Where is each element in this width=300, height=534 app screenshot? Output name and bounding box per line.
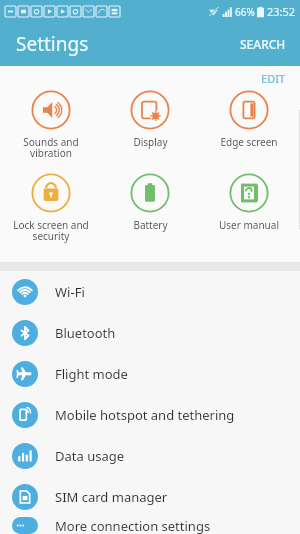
staticText: 66% <box>235 5 255 19</box>
staticText: Edge screen <box>220 135 278 149</box>
button[interactable]: Flight mode <box>0 353 300 394</box>
staticText: SEARCH <box>240 36 286 52</box>
button[interactable]: Bluetooth <box>0 312 300 353</box>
staticText: EDIT <box>261 71 286 86</box>
staticText: Lock screen and security <box>13 218 89 243</box>
staticText: User manual <box>219 218 279 232</box>
button[interactable]: SIM card manager <box>0 476 300 517</box>
button[interactable]: EDIT <box>247 66 300 91</box>
button[interactable]: Battery <box>102 171 198 234</box>
button[interactable]: Mobile hotspot and tethering <box>0 394 300 435</box>
staticText: Display <box>133 135 168 149</box>
button[interactable]: More connection settings <box>0 517 300 534</box>
button[interactable]: Display <box>102 88 198 151</box>
staticText: Flight mode <box>55 365 128 383</box>
staticText: Data usage <box>55 447 125 465</box>
button[interactable]: Edge screen <box>201 88 297 151</box>
button[interactable]: Sounds and vibration <box>3 88 99 162</box>
button[interactable]: Settings <box>0 31 89 57</box>
button[interactable]: Wi-Fi <box>0 271 300 312</box>
button[interactable]: Data usage <box>0 435 300 476</box>
button[interactable]: Lock screen and security <box>3 171 99 245</box>
staticText: Bluetooth <box>55 324 116 342</box>
button[interactable]: User manual <box>201 171 297 234</box>
staticText: Mobile hotspot and tethering <box>55 406 235 424</box>
staticText: SIM card manager <box>55 488 168 506</box>
staticText: More connection settings <box>55 517 211 534</box>
button[interactable]: SEARCH <box>226 26 300 62</box>
staticText: Wi-Fi <box>55 283 85 301</box>
staticText: 23:52 <box>267 4 296 19</box>
staticText: Battery <box>133 218 168 232</box>
staticText: Sounds and vibration <box>23 135 79 160</box>
staticText: Settings <box>16 31 89 57</box>
